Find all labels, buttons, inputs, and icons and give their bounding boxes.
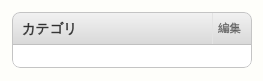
staticText: 編集 [218,21,241,35]
staticText: カテゴリ [22,20,78,37]
staticText: カテゴリ [22,20,78,37]
staticText: 編集 [218,21,241,35]
button[interactable]: 編集 [212,12,252,44]
